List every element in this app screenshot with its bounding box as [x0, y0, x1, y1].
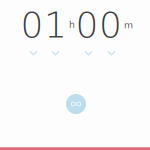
- button[interactable]: Hours, ones digit: 1: [43, 13, 67, 65]
- button[interactable]: Repeat forever: [66, 94, 86, 114]
- staticText: 0: [99, 4, 122, 46]
- staticText: 0: [20, 4, 43, 46]
- staticText: h: [69, 19, 75, 30]
- button[interactable]: Minutes, ones digit: 0: [98, 13, 122, 65]
- staticText: 0: [75, 4, 98, 46]
- staticText: 1: [44, 4, 67, 46]
- button[interactable]: Minutes, tens digit: 0: [75, 13, 99, 65]
- button[interactable]: Hours, tens digit: 0: [20, 13, 44, 65]
- staticText: m: [124, 20, 133, 30]
